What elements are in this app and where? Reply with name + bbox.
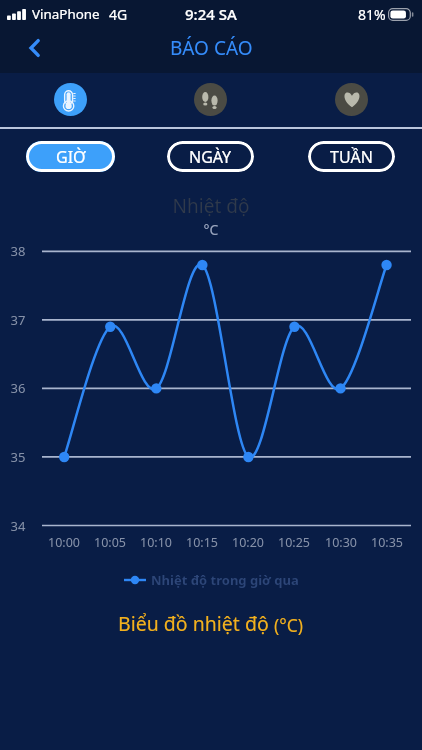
- button[interactable]: GIỜ: [26, 141, 115, 172]
- staticText: 10:20: [224, 534, 272, 551]
- button[interactable]: Back: [17, 30, 53, 66]
- staticText: (°C): [274, 613, 304, 637]
- staticText: 37: [6, 311, 30, 329]
- staticText: 4G: [109, 5, 128, 24]
- staticText: Biểu đồ nhiệt độ: [118, 610, 274, 637]
- staticText: 10:10: [132, 534, 180, 551]
- staticText: 35: [6, 448, 30, 466]
- staticText: VinaPhone: [32, 5, 100, 23]
- button[interactable]: Heart rate: [335, 83, 368, 116]
- staticText: 36: [6, 379, 30, 397]
- button[interactable]: NGÀY: [167, 141, 254, 172]
- staticText: 10:05: [86, 534, 134, 551]
- staticText: 10:15: [178, 534, 226, 551]
- staticText: °C: [0, 220, 422, 239]
- staticText: NGÀY: [189, 146, 232, 168]
- staticText: 81%: [358, 5, 386, 24]
- button[interactable]: Temperature: [54, 83, 87, 116]
- button[interactable]: TUẦN: [308, 141, 395, 172]
- staticText: GIỜ: [56, 146, 86, 168]
- staticText: BÁO CÁO: [170, 35, 253, 61]
- staticText: 10:30: [317, 534, 365, 551]
- staticText: 10:00: [40, 534, 88, 551]
- staticText: 38: [6, 242, 30, 260]
- staticText: 10:25: [270, 534, 318, 551]
- staticText: 9:24 SA: [185, 4, 237, 24]
- button[interactable]: Steps: [194, 83, 227, 116]
- staticText: Nhiệt độ trong giờ qua: [151, 571, 299, 589]
- staticText: Nhiệt độ: [0, 193, 422, 219]
- staticText: 34: [6, 517, 30, 535]
- staticText: TUẦN: [330, 146, 373, 168]
- staticText: 10:35: [363, 534, 411, 551]
